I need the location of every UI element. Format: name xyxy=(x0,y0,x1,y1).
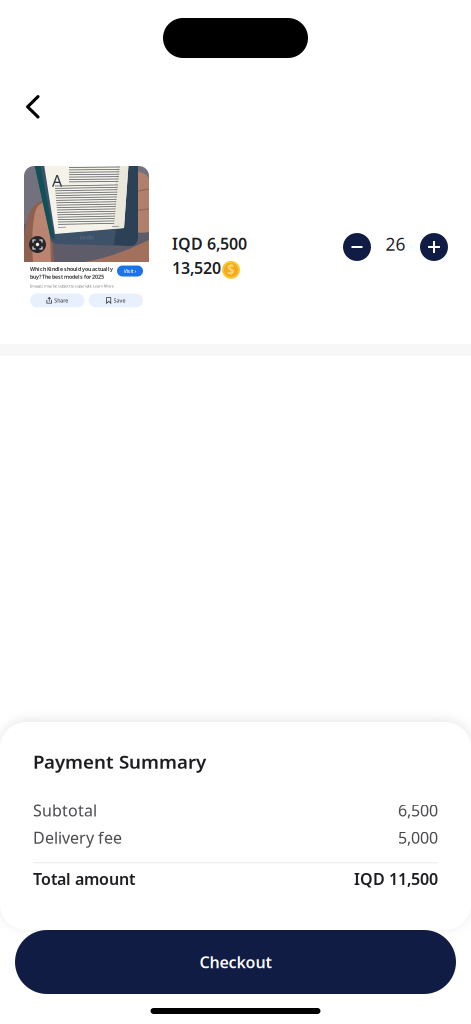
staticText: Payment Summary xyxy=(33,749,206,774)
staticText: Save xyxy=(113,297,125,304)
staticText: A xyxy=(52,170,62,191)
staticText: Visit › xyxy=(123,267,136,275)
staticText: $ xyxy=(227,260,235,278)
staticText: Subtotal xyxy=(33,800,97,821)
staticText: kindle xyxy=(80,234,94,241)
staticText: Share xyxy=(54,297,68,304)
staticText: 26 xyxy=(385,232,405,255)
staticText: 13,520 xyxy=(172,257,221,278)
staticText: Checkout xyxy=(199,951,271,973)
staticText: 5,000 xyxy=(398,827,438,848)
staticText: 6,500 xyxy=(398,800,438,821)
button[interactable]: Checkout xyxy=(15,930,456,994)
staticText: Delivery fee xyxy=(33,827,122,848)
button[interactable]: Increase quantity xyxy=(420,233,448,261)
staticText: Total amount xyxy=(33,868,135,889)
staticText: IQD 6,500 xyxy=(172,233,247,254)
staticText: Which Kindle should you actually xyxy=(30,265,113,273)
staticText: buy? The best models for 2025 xyxy=(30,273,104,280)
staticText: Images may be subject to copyright. Lear… xyxy=(30,283,114,288)
staticText: IQD 11,500 xyxy=(354,868,438,889)
button[interactable]: Back xyxy=(13,87,53,127)
button[interactable]: Decrease quantity xyxy=(343,233,371,261)
